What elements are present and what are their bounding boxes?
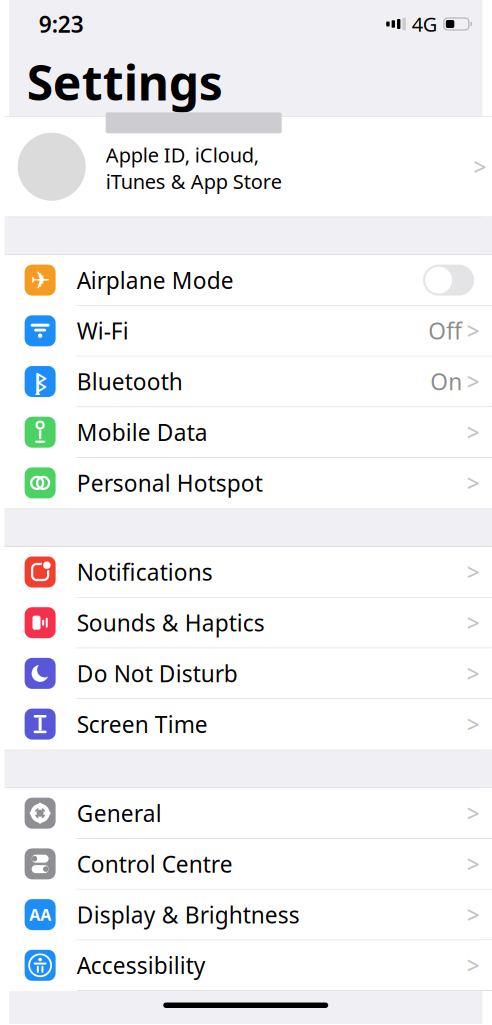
staticText: > xyxy=(467,709,480,739)
staticText: > xyxy=(467,950,480,980)
button[interactable]: AA xyxy=(5,890,492,940)
staticText: AA xyxy=(29,904,51,925)
staticText: On xyxy=(430,366,462,396)
staticText: Wi-Fi xyxy=(77,316,129,346)
staticText: Mobile Data xyxy=(77,417,208,447)
staticText: ᛒ xyxy=(34,366,46,397)
staticText: > xyxy=(467,557,480,587)
staticText: > xyxy=(467,798,480,828)
button[interactable]: Accessibility xyxy=(5,940,492,991)
staticText: Personal Hotspot xyxy=(77,468,263,498)
staticText: Off xyxy=(428,316,462,346)
staticText: Screen Time xyxy=(77,709,208,739)
staticText: > xyxy=(467,468,480,498)
staticText: > xyxy=(474,152,487,182)
staticText: 9:23 xyxy=(39,9,84,39)
staticText: Do Not Disturb xyxy=(77,658,238,688)
staticText: > xyxy=(467,608,480,638)
staticText: > xyxy=(467,849,480,879)
staticText: 4G xyxy=(412,11,438,37)
staticText: Control Centre xyxy=(77,849,233,879)
staticText: General xyxy=(77,798,162,828)
staticText: > xyxy=(467,417,480,447)
staticText: > xyxy=(467,366,480,396)
button[interactable]: Notifications xyxy=(5,547,492,598)
button[interactable]: Screen Time xyxy=(5,699,492,750)
staticText: > xyxy=(467,899,480,930)
staticText: Apple ID, iCloud, iTunes & App Store xyxy=(106,141,282,194)
button[interactable]: Personal Hotspot xyxy=(5,458,492,509)
button[interactable]: Sounds & Haptics xyxy=(5,598,492,648)
staticText: Bluetooth xyxy=(77,366,183,396)
button[interactable]: ᛒ xyxy=(5,356,492,407)
staticText: Display & Brightness xyxy=(77,899,300,930)
button[interactable]: Wi-Fi xyxy=(5,306,492,356)
staticText: Airplane Mode xyxy=(77,265,234,295)
button[interactable]: ✈ xyxy=(5,255,492,306)
staticText: ✈ xyxy=(30,266,50,294)
button[interactable]: Apple ID, iCloud, iTunes & App Store xyxy=(0,117,492,217)
button[interactable]: Do Not Disturb xyxy=(5,648,492,699)
staticText: > xyxy=(467,658,480,688)
staticText: Notifications xyxy=(77,557,213,587)
staticText: Accessibility xyxy=(77,950,206,980)
button[interactable]: General xyxy=(5,788,492,839)
staticText: > xyxy=(467,316,480,346)
button[interactable]: Control Centre xyxy=(5,839,492,890)
button[interactable]: Mobile Data xyxy=(5,407,492,458)
staticText: Sounds & Haptics xyxy=(77,608,265,638)
staticText: Settings xyxy=(27,50,223,114)
